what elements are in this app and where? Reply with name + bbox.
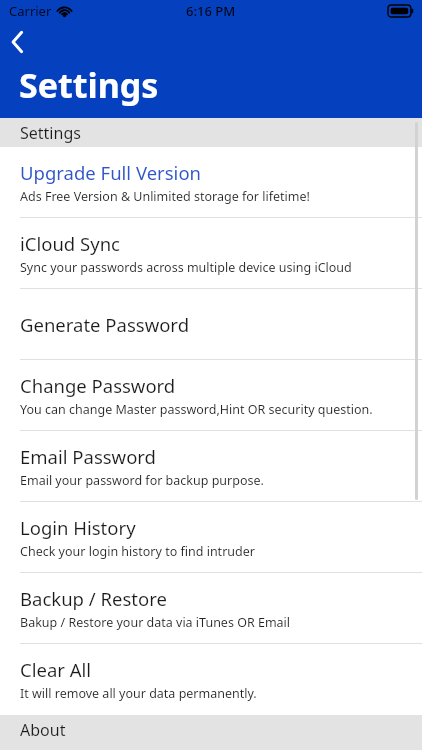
button[interactable]: Clear All: [0, 644, 422, 714]
staticText: Email Password: [20, 444, 156, 469]
staticText: Clear All: [20, 657, 92, 682]
staticText: Carrier: [9, 2, 52, 20]
staticText: Generate Password: [20, 312, 190, 337]
button[interactable]: Backup / Restore: [0, 573, 422, 643]
button[interactable]: Change Password: [0, 360, 422, 430]
staticText: Check your login history to find intrude…: [20, 543, 255, 560]
staticText: 6:16 PM: [186, 2, 236, 20]
staticText: About: [20, 719, 66, 741]
staticText: Settings: [19, 62, 159, 108]
staticText: Change Password: [20, 373, 176, 398]
button[interactable]: iCloud Sync: [0, 218, 422, 288]
staticText: Settings: [20, 122, 81, 144]
staticText: Ads Free Version & Unlimited storage for…: [20, 188, 310, 205]
staticText: You can change Master password,Hint OR s…: [20, 401, 373, 418]
staticText: It will remove all your data permanently…: [20, 685, 257, 702]
staticText: Backup / Restore: [20, 586, 167, 611]
staticText: Login History: [20, 515, 136, 540]
button[interactable]: Back: [0, 22, 44, 62]
button[interactable]: Login History: [0, 502, 422, 572]
staticText: Email your password for backup purpose.: [20, 472, 264, 489]
button[interactable]: Email Password: [0, 431, 422, 501]
button[interactable]: Generate Password: [0, 289, 422, 359]
staticText: Sync your passwords across multiple devi…: [20, 259, 352, 276]
staticText: Upgrade Full Version: [20, 160, 202, 185]
staticText: Bakup / Restore your data via iTunes OR …: [20, 614, 291, 631]
button[interactable]: Upgrade Full Version: [0, 147, 422, 217]
staticText: iCloud Sync: [20, 231, 120, 256]
